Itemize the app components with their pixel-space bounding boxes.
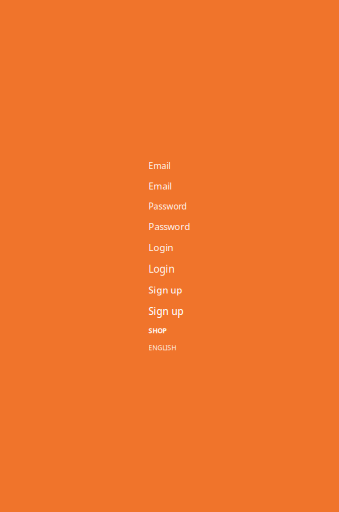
staticText: Login (148, 262, 174, 276)
staticText: Login (148, 241, 173, 254)
staticText: Email (148, 160, 170, 171)
staticText: Sign up (148, 304, 183, 318)
staticText: ENGLISH (148, 343, 176, 352)
staticText: Email (148, 179, 171, 192)
staticText: SHOP (148, 326, 166, 335)
staticText: Sign up (148, 284, 182, 296)
staticText: Password (148, 200, 186, 212)
staticText: Password (148, 220, 190, 233)
